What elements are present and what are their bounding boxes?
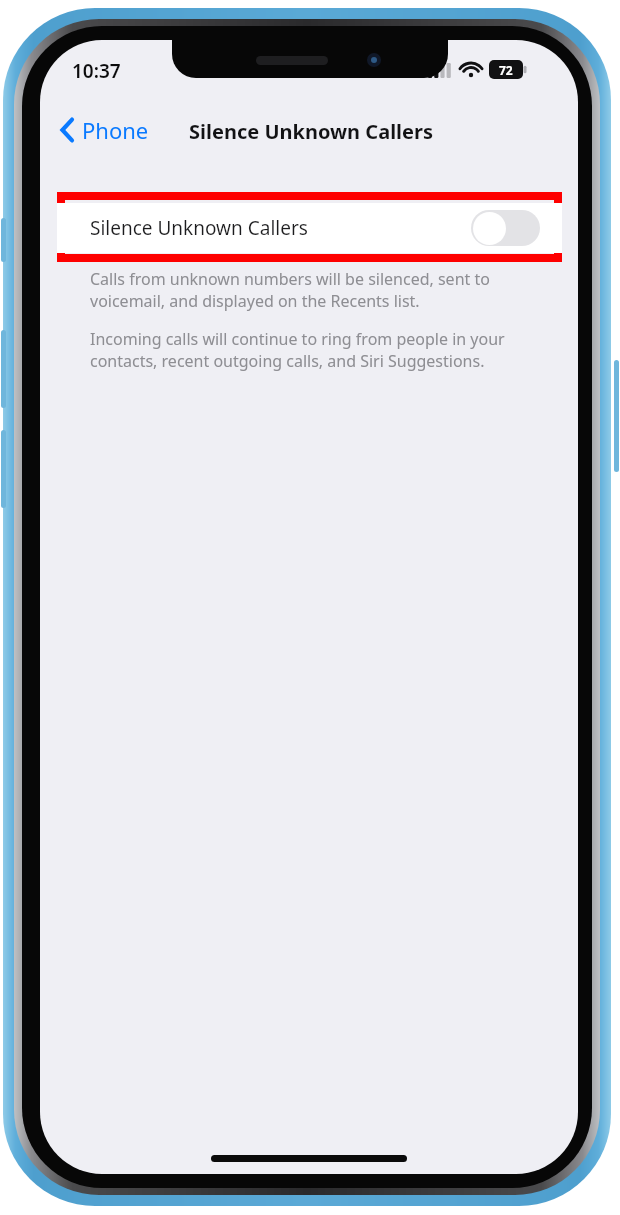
staticText: Phone xyxy=(82,115,149,145)
staticText: 10:37 xyxy=(72,58,121,84)
staticText: Incoming calls will continue to ring fro… xyxy=(90,328,560,372)
staticText: 72 xyxy=(499,62,513,78)
button[interactable]: Silence Unknown Callers xyxy=(57,203,562,253)
staticText: Silence Unknown Callers xyxy=(178,118,444,145)
staticText: Silence Unknown Callers xyxy=(90,215,308,241)
staticText: Calls from unknown numbers will be silen… xyxy=(90,268,560,312)
button[interactable]: Silence Unknown Callers toggle, off xyxy=(471,210,540,246)
button[interactable]: Phone xyxy=(54,108,155,152)
